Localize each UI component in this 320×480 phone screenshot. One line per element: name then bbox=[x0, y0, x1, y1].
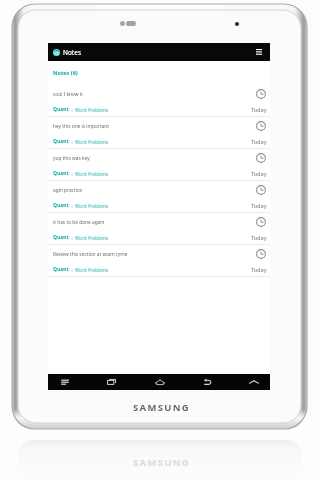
staticText: Today bbox=[251, 234, 267, 242]
staticText: Notes (6) bbox=[53, 69, 78, 76]
staticText: : Word Problems bbox=[69, 171, 109, 177]
button[interactable]: Review this section at exam tyme bbox=[48, 245, 270, 277]
staticText: Review this section at exam tyme bbox=[53, 251, 128, 258]
staticText: : Word Problems bbox=[69, 267, 109, 273]
staticText: : Word Problems bbox=[69, 203, 109, 209]
button[interactable]: hey this one is important bbox=[48, 117, 270, 149]
button[interactable]: yup this was key bbox=[48, 149, 270, 181]
other: Reminder bbox=[256, 153, 266, 163]
staticText: Quant bbox=[53, 106, 69, 113]
button[interactable]: Menu bbox=[49, 374, 80, 390]
button[interactable]: Hide bbox=[238, 374, 269, 390]
staticText: Quant bbox=[53, 202, 69, 209]
button[interactable]: cool I know it bbox=[48, 85, 270, 117]
staticText: SAMSUNG bbox=[133, 456, 190, 469]
button[interactable]: Back bbox=[191, 374, 222, 390]
other: Reminder bbox=[256, 217, 266, 227]
staticText: Quant bbox=[53, 234, 69, 241]
other: Reminder bbox=[256, 89, 266, 99]
button[interactable]: Home bbox=[144, 374, 175, 390]
staticText: : Word Problems bbox=[69, 107, 109, 113]
staticText: it has to be done again bbox=[53, 219, 105, 226]
staticText: cool I know it bbox=[53, 91, 83, 98]
staticText: yup this was key bbox=[53, 155, 90, 162]
staticText: Today bbox=[251, 202, 267, 210]
staticText: Today bbox=[251, 266, 267, 274]
staticText: hey this one is important bbox=[53, 123, 110, 130]
staticText: Quant bbox=[53, 170, 69, 177]
staticText: SAMSUNG bbox=[133, 401, 190, 414]
staticText: Quant bbox=[53, 138, 69, 145]
staticText: Today bbox=[251, 138, 267, 146]
other: Reminder bbox=[256, 249, 266, 259]
staticText: Today bbox=[251, 106, 267, 114]
staticText: : Word Problems bbox=[69, 235, 109, 241]
other: Reminder bbox=[256, 121, 266, 131]
staticText: Notes bbox=[63, 48, 81, 57]
staticText: agin practice bbox=[53, 187, 82, 194]
button[interactable]: it has to be done again bbox=[48, 213, 270, 245]
button[interactable]: Recent apps bbox=[96, 374, 127, 390]
staticText: : Word Problems bbox=[69, 139, 109, 145]
button[interactable]: agin practice bbox=[48, 181, 270, 213]
other: Reminder bbox=[256, 185, 266, 195]
button[interactable]: Menu bbox=[251, 44, 267, 60]
button[interactable]: Notes bbox=[48, 43, 270, 61]
staticText: Today bbox=[251, 170, 267, 178]
staticText: Quant bbox=[53, 266, 69, 273]
